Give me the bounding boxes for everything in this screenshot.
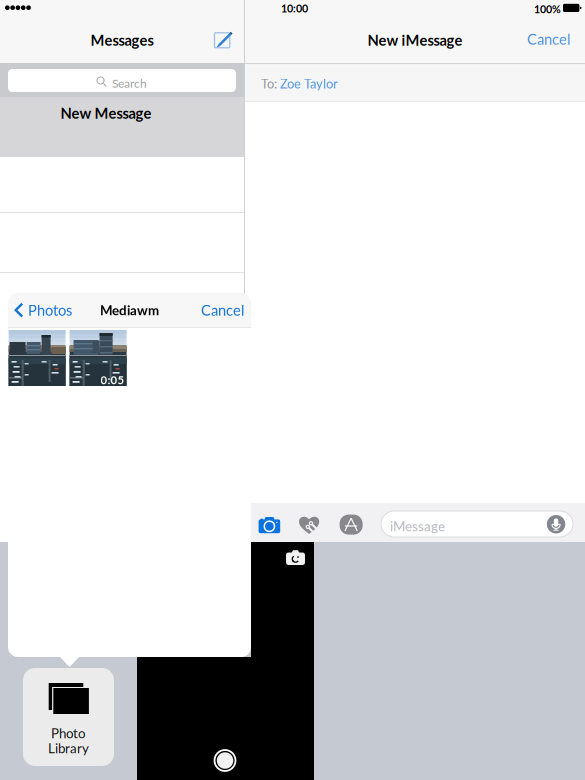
- staticText: Photo: [51, 725, 86, 741]
- button[interactable]: Cancel: [188, 296, 244, 324]
- staticText: Mediawm: [100, 302, 159, 318]
- button[interactable]: New Message: [208, 23, 240, 55]
- button[interactable]: Camera: [259, 516, 280, 532]
- button[interactable]: Digital Touch: [298, 514, 319, 534]
- staticText: Zoe Taylor: [280, 76, 338, 91]
- button[interactable]: Cancel: [506, 25, 570, 53]
- button[interactable]: Video, 5 seconds: [70, 330, 127, 386]
- button[interactable]: Photo: [9, 330, 66, 386]
- staticText: Search: [112, 76, 147, 90]
- staticText: 0:05: [101, 373, 125, 387]
- staticText: Cancel: [201, 301, 244, 319]
- button[interactable]: App Store: [340, 515, 363, 535]
- staticText: New Message: [60, 104, 151, 122]
- button[interactable]: Photos: [14, 296, 76, 324]
- staticText: Library: [48, 740, 89, 756]
- staticText: To:: [261, 76, 277, 91]
- staticText: iMessage: [390, 518, 445, 534]
- staticText: Photos: [28, 301, 72, 319]
- staticText: Messages: [90, 31, 153, 49]
- staticText: Cancel: [527, 30, 570, 48]
- button[interactable]: Dictate: [547, 515, 565, 533]
- staticText: New iMessage: [367, 31, 462, 49]
- staticText: 10:00: [281, 2, 308, 15]
- staticText: 100%: [534, 3, 561, 16]
- button[interactable]: Photo: [23, 668, 114, 766]
